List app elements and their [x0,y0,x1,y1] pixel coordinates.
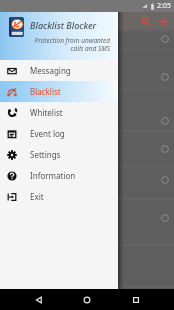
button[interactable]: Exit [0,186,118,207]
button[interactable]: Add [154,12,172,30]
button[interactable]: Search [136,12,154,30]
staticText: Event log [30,128,65,139]
button[interactable]: Settings [0,144,118,165]
button[interactable]: Messaging [0,60,118,81]
staticText: Exit [30,191,44,202]
button[interactable]: Back [29,290,49,310]
button[interactable]: Home [77,290,97,310]
staticText: Protection from unwanted calls and SMS [34,36,110,53]
button[interactable]: Whitelist [0,102,118,123]
button[interactable]: Event log [0,123,118,144]
button[interactable]: Blacklist [0,81,118,102]
staticText: Blacklist [30,86,61,97]
staticText: Information [30,170,76,181]
staticText: Messaging [30,65,71,76]
staticText: Settings [30,149,61,160]
staticText: 2:05 [157,1,171,11]
button[interactable]: Information [0,165,118,186]
staticText: Whitelist [30,107,63,118]
button[interactable]: Recents [126,290,146,310]
staticText: Blacklist Blocker [30,19,97,31]
